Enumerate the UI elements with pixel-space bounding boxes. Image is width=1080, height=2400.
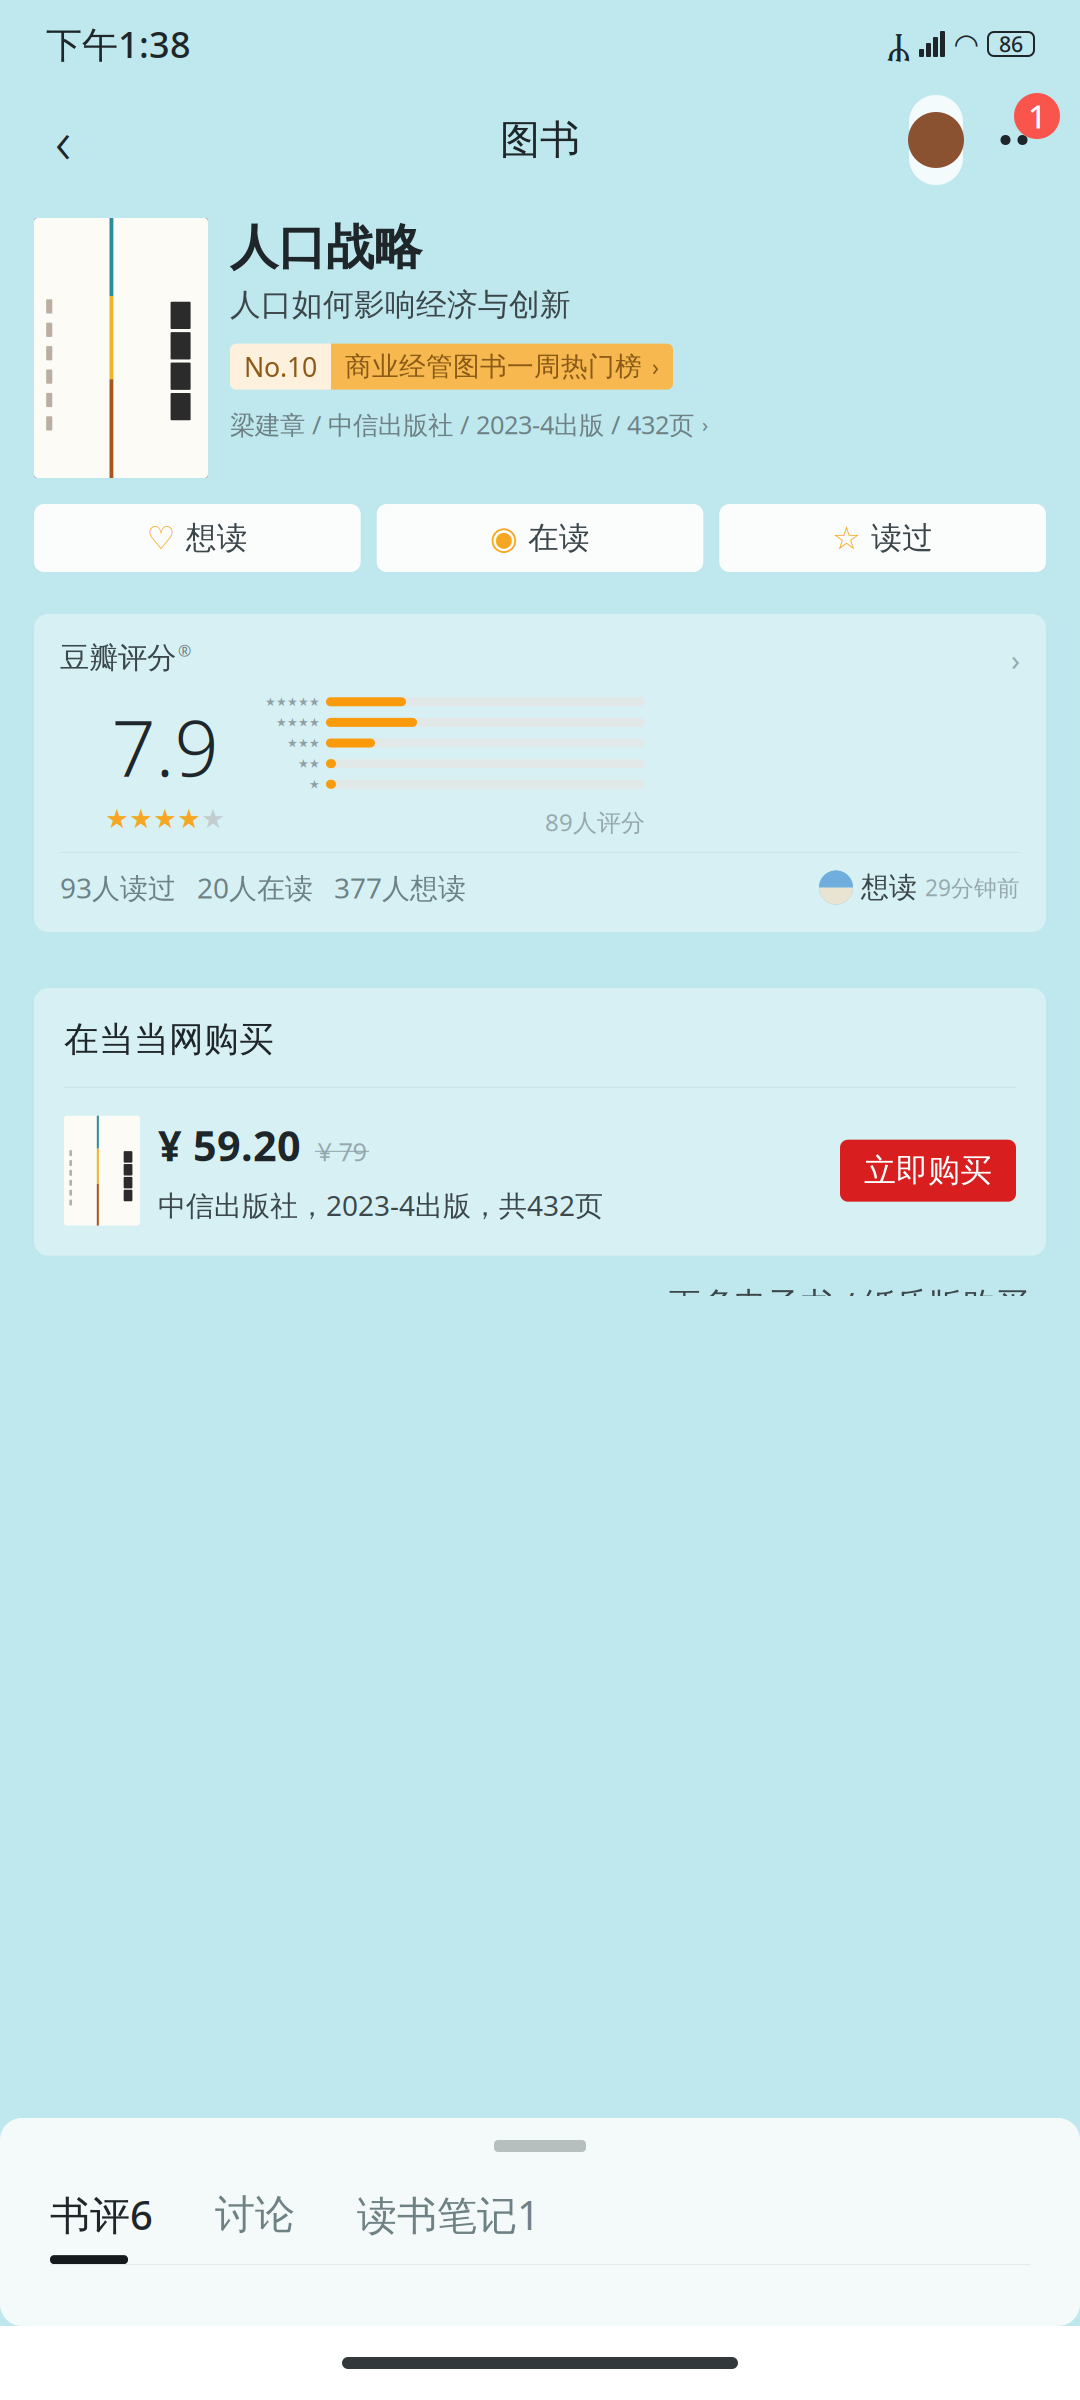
staticText: › <box>652 352 659 382</box>
staticText: 书评6 <box>50 2188 153 2241</box>
staticText: ★ <box>298 736 309 750</box>
staticText: ★ <box>265 695 276 709</box>
staticText: 在当当网购买 <box>64 1018 274 1061</box>
staticText: ◠ <box>955 27 978 61</box>
button[interactable]: ◉ <box>377 504 703 572</box>
staticText: 89人评分 <box>545 806 645 838</box>
staticText: ★ <box>105 804 129 834</box>
staticText: ¥ 79 <box>317 1134 366 1168</box>
staticText: 1 <box>1028 95 1046 137</box>
button[interactable]: 讨论 <box>215 2190 295 2262</box>
staticText: 人口战略 <box>230 218 422 277</box>
staticText: ★ <box>309 757 320 770</box>
staticText: ★ <box>201 804 225 834</box>
staticText: 中信出版社，2023-4出版，共432页 <box>158 1186 603 1224</box>
staticText: ® <box>178 640 191 661</box>
staticText: ‹ <box>55 99 71 181</box>
staticText: 梁建章 / 中信出版社 / 2023-4出版 / 432页 <box>230 408 694 441</box>
staticText: 读过 <box>871 519 933 557</box>
staticText: ★ <box>129 804 153 834</box>
staticText: ★ <box>276 716 287 729</box>
staticText: 下午1:38 <box>46 20 191 68</box>
button[interactable]: No.10 <box>230 344 673 390</box>
staticText: ★ <box>276 695 287 709</box>
button[interactable]: Book cover <box>34 218 208 478</box>
staticText: 豆瓣评分 <box>60 640 176 676</box>
button[interactable]: 梁建章 / 中信出版社 / 2023-4出版 / 432页 <box>230 408 708 441</box>
staticText: ★ <box>309 716 320 729</box>
button[interactable]: Profile <box>906 95 966 185</box>
button[interactable]: 想读 <box>819 870 1020 905</box>
button[interactable]: 读书笔记1 <box>357 2188 540 2264</box>
staticText: ★ <box>309 736 320 750</box>
button[interactable]: 豆瓣评分 <box>60 640 1020 838</box>
staticText: 更多电子书 / 纸质版购买 <box>668 1282 1028 1326</box>
staticText: ★ <box>287 695 298 709</box>
staticText: 86 <box>999 30 1023 58</box>
staticText: 讨论 <box>215 2190 295 2239</box>
staticText: ★ <box>287 736 298 750</box>
staticText: ★ <box>309 695 320 709</box>
staticText: 商业经管图书一周热门榜 <box>345 350 642 383</box>
staticText: ★ <box>298 695 309 709</box>
button[interactable]: More options <box>976 105 1052 175</box>
staticText: ¥ 59.20 <box>158 1118 301 1173</box>
staticText: 93人读过 20人在读 377人想读 <box>60 869 466 906</box>
staticText: 想读 <box>861 870 917 905</box>
staticText: No.10 <box>244 349 317 384</box>
staticText: ★ <box>153 804 177 834</box>
button[interactable]: 书评6 <box>50 2188 153 2264</box>
staticText: 人口如何影响经济与创新 <box>230 286 571 324</box>
staticText: ◉ <box>490 520 518 556</box>
button[interactable]: 更多电子书 / 纸质版购买 <box>0 1256 1080 1352</box>
button[interactable]: ☆ <box>719 504 1046 572</box>
button[interactable]: ♡ <box>34 504 361 572</box>
staticText: 立即购买 <box>864 1151 992 1190</box>
staticText: 在读 <box>528 519 590 557</box>
staticText: 图书 <box>500 115 580 164</box>
staticText: ★ <box>298 757 309 770</box>
staticText: 想读 <box>186 519 248 557</box>
staticText: ★ <box>177 804 201 834</box>
staticText: ★ <box>309 777 320 791</box>
staticText: › <box>702 411 708 438</box>
staticText: ♡ <box>147 520 176 556</box>
staticText: 29分钟前 <box>925 872 1020 903</box>
staticText: 读书笔记1 <box>357 2188 540 2241</box>
button[interactable]: 立即购买 <box>840 1140 1016 1202</box>
staticText: 7.9 <box>111 695 218 798</box>
staticText: ★ <box>287 716 298 729</box>
staticText: ☆ <box>832 520 861 556</box>
button[interactable]: Back <box>28 105 98 175</box>
staticText: ★ <box>298 716 309 729</box>
staticText: › <box>1011 640 1020 679</box>
staticText: ᛦ <box>887 26 909 62</box>
